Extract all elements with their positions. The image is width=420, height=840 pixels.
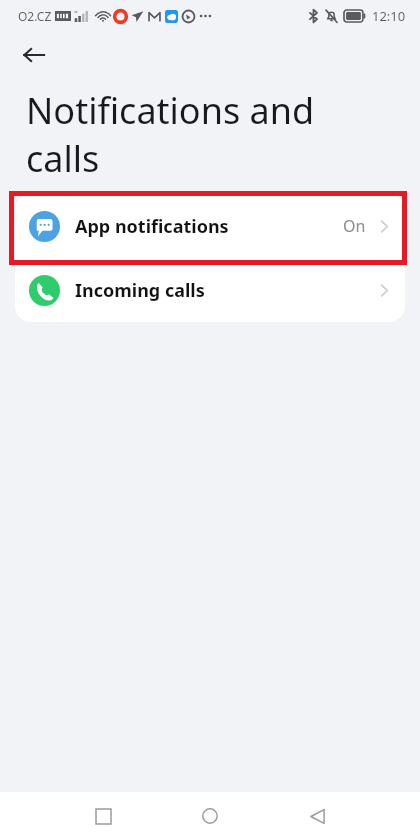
staticText: Incoming calls bbox=[75, 278, 205, 303]
staticText: App notifications bbox=[75, 214, 229, 239]
staticText: Notifications and calls bbox=[26, 86, 390, 182]
button[interactable]: App notifications bbox=[15, 194, 405, 258]
button[interactable]: Back bbox=[12, 33, 56, 77]
staticText: 12:10 bbox=[372, 7, 406, 25]
button[interactable]: Back bbox=[295, 794, 339, 838]
button[interactable]: Home bbox=[188, 794, 232, 838]
staticText: O2.CZ bbox=[18, 8, 52, 24]
button[interactable]: Incoming calls bbox=[15, 258, 405, 322]
staticText: On bbox=[343, 215, 366, 237]
button[interactable]: Recent apps bbox=[81, 794, 125, 838]
